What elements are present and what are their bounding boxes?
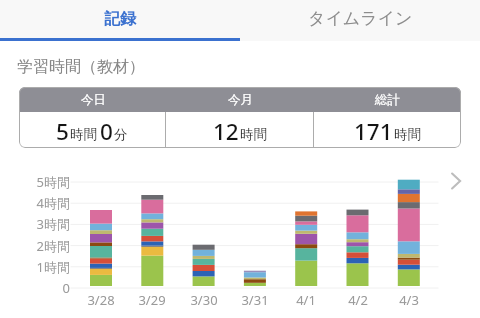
staticText: 総計 [375,92,400,108]
staticText: 3/30 [190,291,218,309]
staticText: 4時間 [36,194,70,212]
staticText: 3/31 [241,291,269,309]
staticText: 今月 [228,92,253,108]
staticText: 3/29 [138,291,166,309]
staticText: 3/28 [87,291,115,309]
staticText: 2時間 [36,237,70,255]
staticText: 時間 [70,126,97,143]
staticText: 5 [56,116,69,147]
staticText: 時間 [394,126,421,143]
button[interactable]: 記録 [0,0,240,39]
staticText: 学習時間（教材） [17,57,145,77]
staticText: 4/1 [296,291,316,309]
staticText: 今日 [81,92,106,108]
staticText: 4/3 [399,291,419,309]
staticText: 5時間 [36,173,70,191]
button[interactable]: タイムライン [240,0,480,39]
staticText: 分 [114,126,128,143]
staticText: 1時間 [36,258,70,276]
staticText: 0 [62,279,70,297]
staticText: 0 [100,116,113,147]
staticText: 12 [213,116,239,147]
staticText: タイムライン [308,8,413,29]
staticText: 記録 [104,9,136,29]
staticText: 3時間 [36,215,70,233]
button[interactable]: Next week [439,165,471,197]
staticText: 時間 [240,126,267,143]
staticText: 4/2 [348,291,368,309]
staticText: 171 [354,116,393,147]
